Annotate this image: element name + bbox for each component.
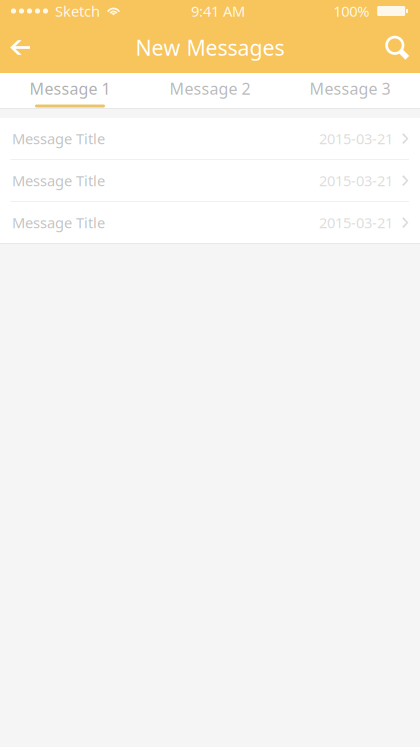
button[interactable]: Message 1 xyxy=(0,73,140,108)
button[interactable]: Message Title xyxy=(0,118,420,159)
staticText: Message 3 xyxy=(309,78,390,99)
staticText: New Messages xyxy=(135,33,284,62)
staticText: Message 2 xyxy=(169,78,250,99)
button[interactable]: Message 3 xyxy=(280,73,420,108)
staticText: 2015-03-21 xyxy=(319,129,393,148)
button[interactable]: Message 2 xyxy=(140,73,280,108)
staticText: 2015-03-21 xyxy=(319,171,393,190)
staticText: 9:41 AM xyxy=(191,1,245,21)
button[interactable]: Message Title xyxy=(0,202,420,243)
staticText: Message Title xyxy=(12,171,105,190)
button[interactable]: Message Title xyxy=(0,160,420,201)
staticText: 100% xyxy=(333,1,369,21)
staticText: Message Title xyxy=(12,213,105,232)
staticText: 2015-03-21 xyxy=(319,213,393,232)
staticText: Sketch xyxy=(55,1,100,21)
button[interactable]: Search xyxy=(373,22,420,73)
staticText: Message Title xyxy=(12,129,105,148)
button[interactable]: Back xyxy=(0,22,44,73)
staticText: Message 1 xyxy=(29,78,110,99)
